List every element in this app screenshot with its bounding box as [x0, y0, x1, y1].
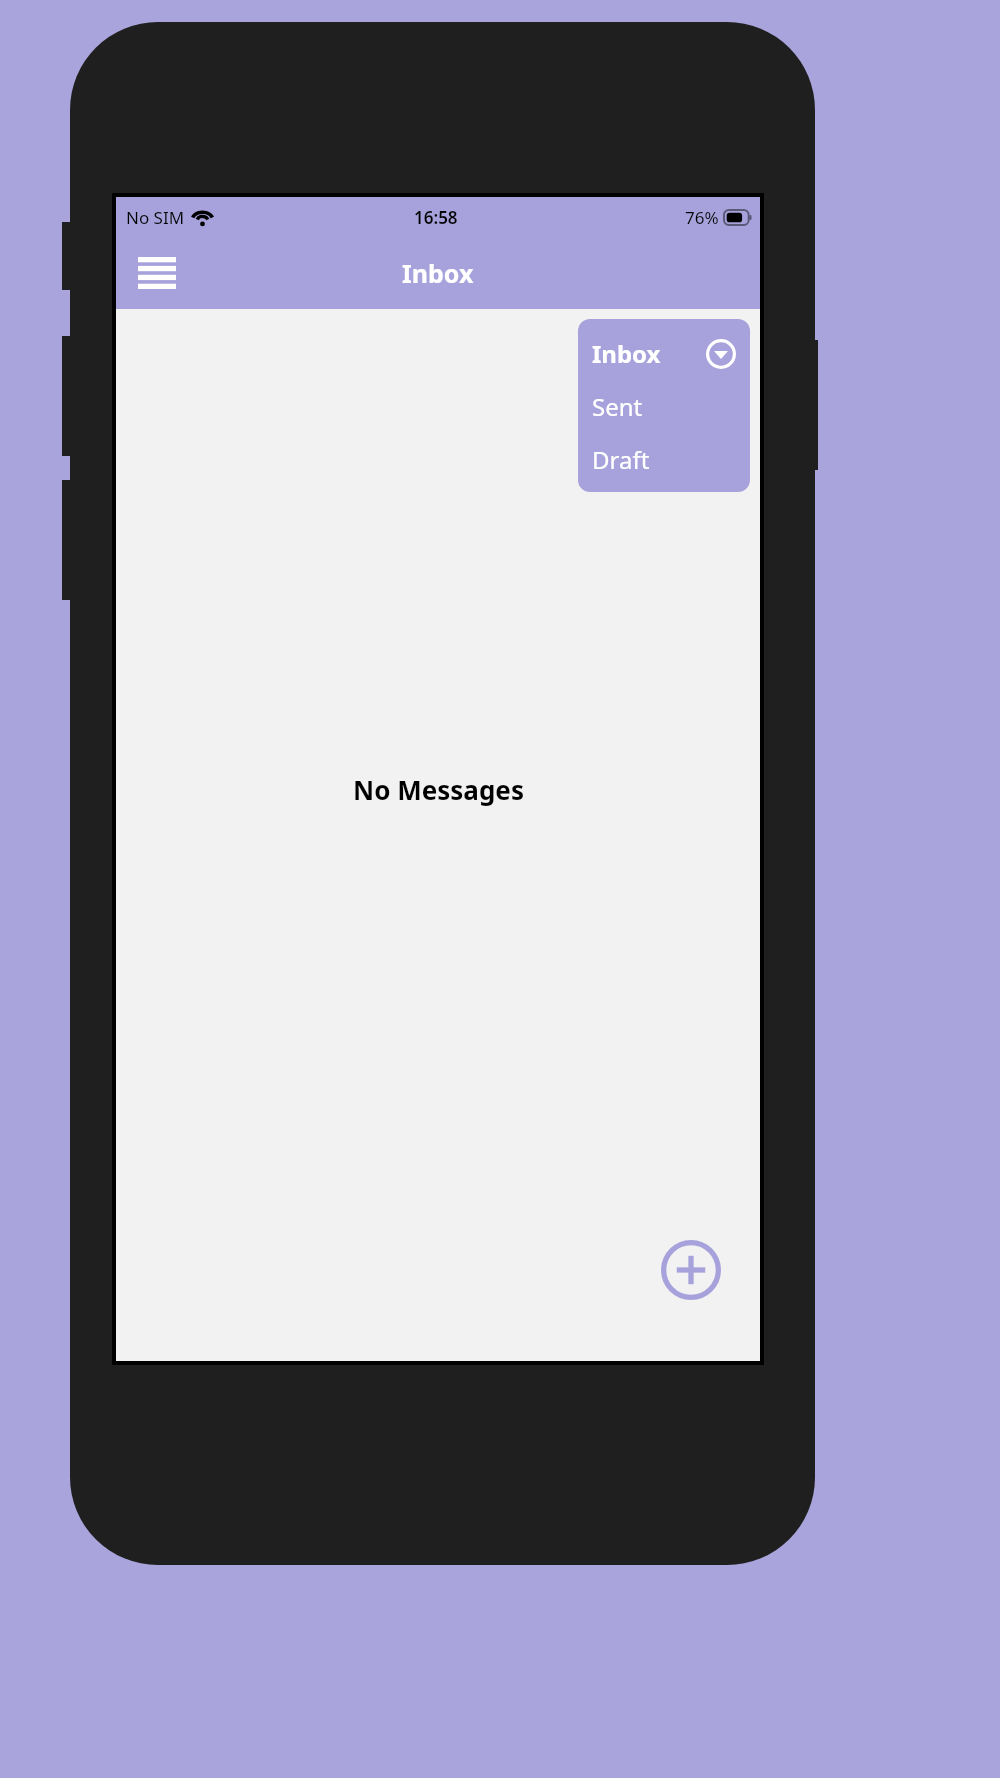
staticText: No Messages: [353, 772, 524, 807]
staticText: Inbox: [402, 256, 474, 290]
button[interactable]: Sent: [592, 386, 736, 427]
staticText: 76%: [685, 206, 719, 229]
other: Collapse folder list: [706, 339, 736, 369]
button[interactable]: Compose new message: [660, 1239, 722, 1301]
button[interactable]: Inbox: [592, 331, 736, 376]
staticText: Inbox: [592, 337, 661, 370]
staticText: No SIM: [126, 206, 185, 229]
staticText: 16:58: [414, 206, 458, 229]
button[interactable]: Draft: [592, 439, 736, 480]
button[interactable]: Open navigation menu: [134, 250, 180, 296]
